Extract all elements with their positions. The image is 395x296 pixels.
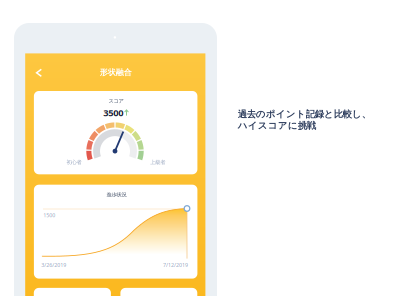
- staticText: 3/26/2019: [41, 261, 66, 269]
- staticText: 進歩状況: [106, 191, 126, 198]
- staticText: 上級者: [150, 159, 165, 165]
- staticText: 3500: [103, 106, 123, 119]
- staticText: 初心者: [66, 159, 81, 165]
- staticText: スコア: [108, 98, 123, 104]
- button[interactable]: Back: [29, 64, 47, 81]
- staticText: 過去のポイント記録と比較し、 ハイスコアに挑戦: [238, 108, 371, 131]
- staticText: 形状融合: [100, 67, 132, 77]
- staticText: 1500: [43, 212, 55, 219]
- staticText: 7/12/2019: [163, 261, 188, 269]
